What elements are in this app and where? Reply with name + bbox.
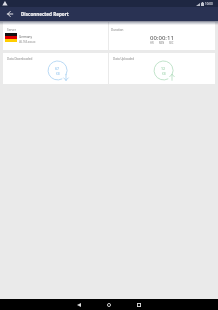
button[interactable]: Server [3, 22, 108, 50]
staticText: 10:00 [205, 2, 213, 6]
staticText: 46.165.xxx.xx [19, 40, 36, 44]
button[interactable]: Home [94, 299, 124, 310]
button[interactable]: Recent apps [124, 299, 154, 310]
staticText: Germany [19, 35, 32, 39]
button[interactable]: Duration [109, 22, 215, 50]
staticText: KB [56, 72, 60, 76]
staticText: KB [162, 72, 166, 76]
button[interactable]: Back [0, 7, 20, 21]
button[interactable]: Back [64, 299, 94, 310]
staticText: Server [7, 28, 17, 32]
staticText: Data Downloaded [7, 57, 33, 61]
button[interactable]: Data Uploaded [109, 53, 215, 84]
staticText: 67 [55, 66, 60, 71]
staticText: HR [150, 41, 154, 45]
staticText: MIN [159, 41, 165, 45]
staticText: Disconnected Report [21, 11, 69, 17]
staticText: Duration [111, 28, 124, 32]
staticText: SEC [169, 41, 174, 45]
button[interactable]: Data Downloaded [3, 53, 108, 84]
staticText: 00:00:11 [150, 34, 174, 42]
staticText: Data Uploaded [113, 57, 135, 61]
staticText: 12 [161, 66, 166, 71]
